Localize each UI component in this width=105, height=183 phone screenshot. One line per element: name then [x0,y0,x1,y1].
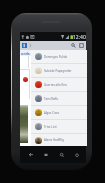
staticText: Algas Cioro [44,111,60,115]
staticText: Subside Papagrnder [44,69,72,73]
button[interactable]: Alanis Hadffilg [31,134,87,146]
button[interactable]: Search [58,149,65,160]
staticText: Tami Raffu [44,97,59,101]
staticText: Alanis Hadffilg [44,138,64,142]
staticText: Guerras alto Kiro [44,83,67,87]
staticText: Domingos Pulido [44,55,68,59]
staticText: ords [21,51,30,56]
button[interactable]: Search [69,41,77,50]
button[interactable]: Tami Raffu [31,92,87,105]
button[interactable]: New contact [77,41,85,50]
staticText: Trise Licti [44,125,57,129]
button[interactable]: Subside Papagrnder [31,64,87,77]
button[interactable]: Guerras alto Kiro [31,78,87,91]
button[interactable]: Trise Licti [31,120,87,133]
staticText: 12:40 [73,34,86,41]
button[interactable]: Record [23,77,28,82]
button[interactable]: Up [21,42,27,49]
button[interactable]: Power [73,149,80,160]
button[interactable]: Domingos Pulido [31,50,87,63]
button[interactable]: Back [27,149,34,160]
button[interactable]: Menu [42,149,49,160]
button[interactable]: Algas Cioro [31,106,87,119]
